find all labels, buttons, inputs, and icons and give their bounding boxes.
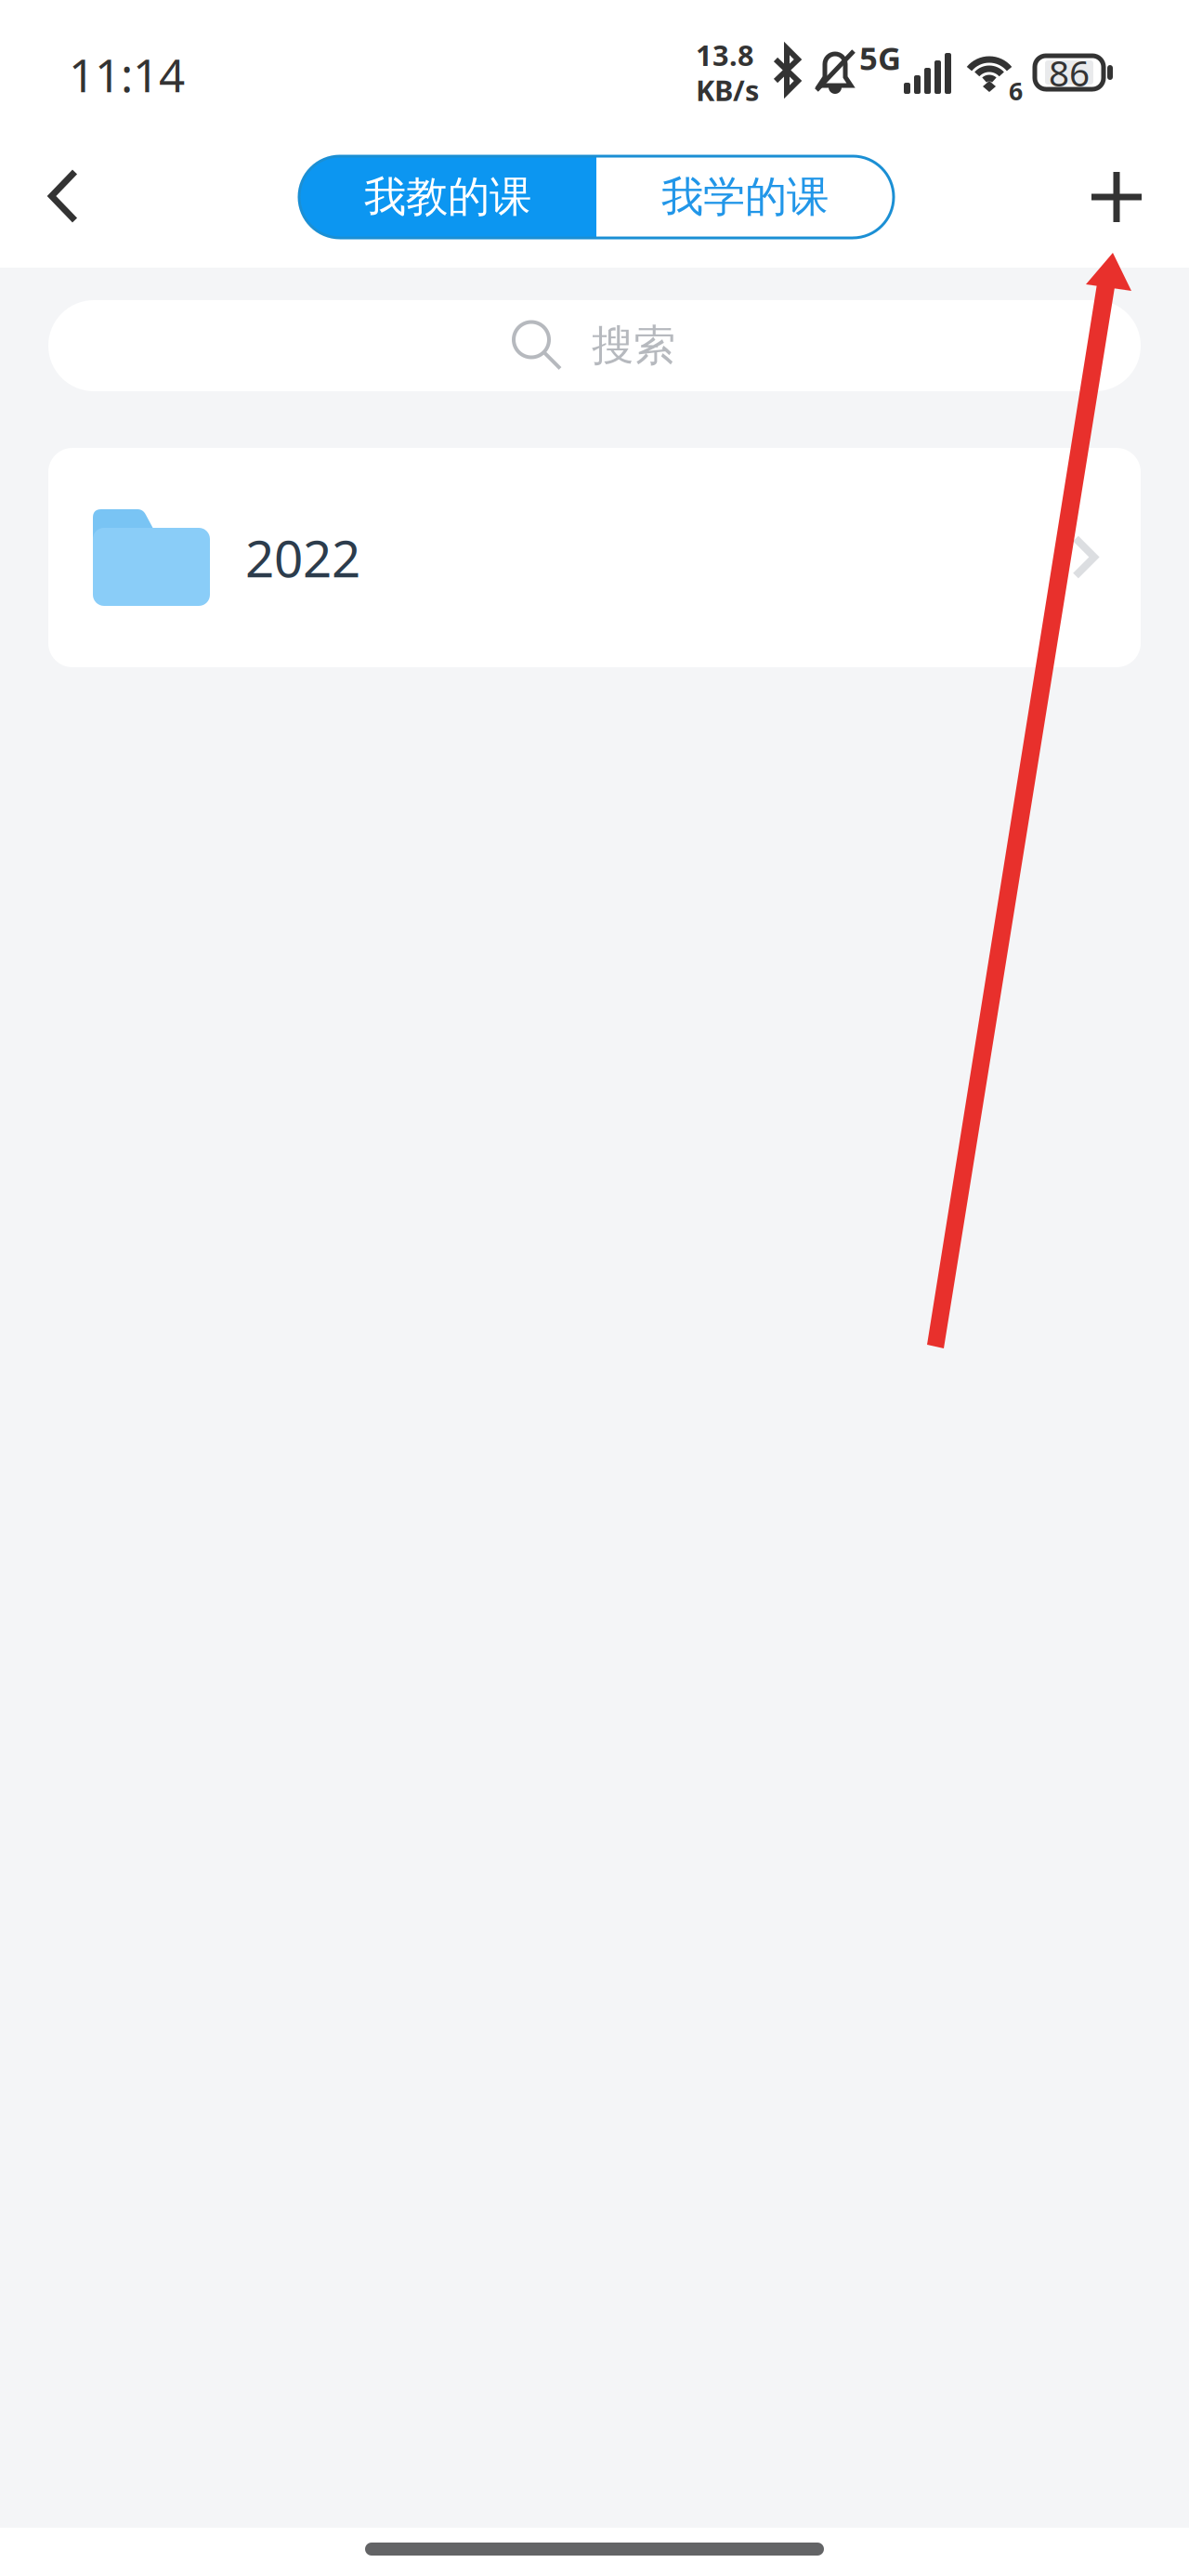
staticText: 我学的课 <box>661 171 829 223</box>
staticText: 2022 <box>245 524 360 591</box>
staticText: 5G <box>859 36 901 79</box>
button[interactable]: 搜索 <box>48 300 1141 391</box>
button[interactable]: 我教的课 <box>299 156 596 238</box>
button[interactable]: 我学的课 <box>596 156 894 238</box>
staticText: 11:14 <box>69 44 185 105</box>
staticText: 86 <box>1049 49 1090 96</box>
staticText: 6 <box>1009 74 1023 107</box>
button[interactable]: 2022 <box>48 448 1141 667</box>
button[interactable]: Back <box>19 146 108 248</box>
staticText: KB/s <box>696 71 759 109</box>
staticText: 13.8 <box>696 36 754 74</box>
staticText: 搜索 <box>592 320 675 372</box>
staticText: 我教的课 <box>364 171 531 223</box>
button[interactable]: Add <box>1072 146 1161 248</box>
